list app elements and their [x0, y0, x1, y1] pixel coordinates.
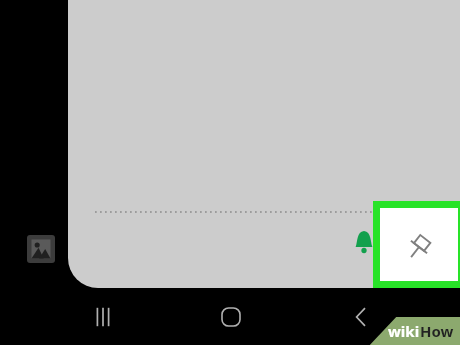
button[interactable]: Back [342, 300, 380, 334]
button[interactable]: Recents [84, 300, 122, 334]
staticText: How [420, 321, 454, 341]
button[interactable] [68, 0, 460, 288]
button[interactable]: Notifications [353, 230, 375, 255]
button[interactable]: Home [212, 300, 250, 334]
button[interactable]: Image [27, 235, 55, 263]
button[interactable]: Pin message [380, 208, 458, 281]
staticText: wiki [388, 321, 420, 341]
